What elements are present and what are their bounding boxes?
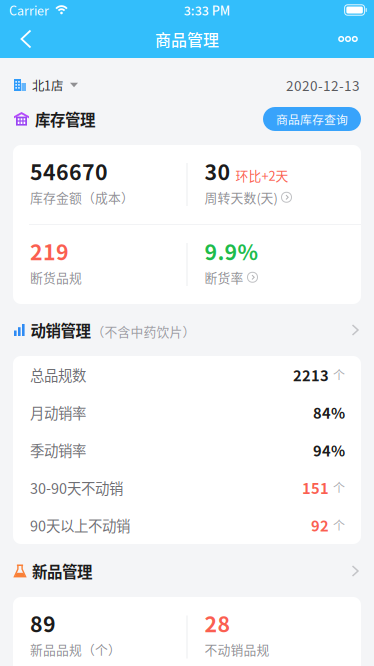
button[interactable]: 动销管理	[0, 315, 374, 345]
staticText: （不含中药饮片）	[92, 322, 196, 340]
staticText: 周转天数(天)	[204, 188, 277, 206]
staticText: 总品规数	[30, 364, 86, 385]
staticText: 84%	[313, 402, 345, 423]
button[interactable]: More options	[328, 21, 368, 57]
staticText: 151	[302, 477, 329, 498]
staticText: 9.9%	[204, 235, 258, 266]
staticText: 个	[333, 366, 345, 383]
staticText: 89	[30, 607, 56, 638]
staticText: 北1店	[32, 76, 63, 94]
staticText: 219	[30, 235, 69, 266]
staticText: 新品品规（个）	[30, 640, 121, 658]
staticText: 30-90天不动销	[30, 477, 123, 498]
staticText: 动销管理	[31, 319, 91, 341]
staticText: 个	[333, 479, 345, 496]
staticText: 94%	[313, 439, 345, 461]
staticText: 不动销品规	[204, 640, 269, 658]
staticText: 环比+2天	[235, 166, 288, 184]
staticText: Carrier	[9, 1, 49, 19]
staticText: 30	[204, 155, 230, 186]
button[interactable]: 90天以上不动销	[13, 506, 361, 544]
button[interactable]: 商品库存查询	[263, 107, 361, 131]
staticText: 新品管理	[32, 560, 92, 582]
button[interactable]: 季动销率	[13, 431, 361, 469]
button[interactable]: 北1店	[0, 72, 86, 98]
staticText: 月动销率	[30, 402, 86, 423]
staticText: 92	[311, 515, 329, 536]
staticText: 2213	[293, 364, 329, 385]
staticText: 断货品规	[30, 268, 82, 286]
button[interactable]: 总品规数	[13, 356, 361, 394]
staticText: 546670	[30, 155, 108, 186]
staticText: 3:33 PM	[184, 1, 230, 19]
staticText: 季动销率	[30, 440, 86, 460]
button[interactable]: 30-90天不动销	[13, 469, 361, 506]
staticText: 库存管理	[35, 108, 95, 130]
staticText: 个	[333, 516, 345, 534]
staticText: 商品库存查询	[276, 110, 348, 128]
staticText: 90天以上不动销	[30, 515, 130, 536]
button[interactable]: 新品管理	[0, 556, 374, 586]
button[interactable]: 月动销率	[13, 394, 361, 431]
button[interactable]: Back	[6, 21, 46, 57]
staticText: 断货率	[204, 268, 243, 286]
staticText: 商品管理	[155, 27, 219, 51]
staticText: 2020-12-13	[286, 75, 360, 95]
staticText: 库存金额（成本）	[30, 188, 134, 206]
staticText: 28	[204, 607, 230, 638]
